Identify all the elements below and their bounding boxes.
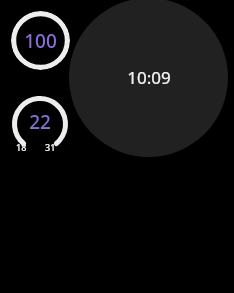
button[interactable]: 10:09 — [69, 0, 228, 157]
staticText: 31 — [45, 141, 56, 153]
staticText: 100 — [24, 28, 57, 54]
button[interactable]: Temperature complication 22 — [12, 96, 68, 152]
staticText: 22 — [29, 109, 51, 135]
button[interactable]: Steps complication 100 — [11, 11, 70, 70]
staticText: 18 — [16, 141, 27, 153]
staticText: 10:09 — [127, 66, 171, 89]
